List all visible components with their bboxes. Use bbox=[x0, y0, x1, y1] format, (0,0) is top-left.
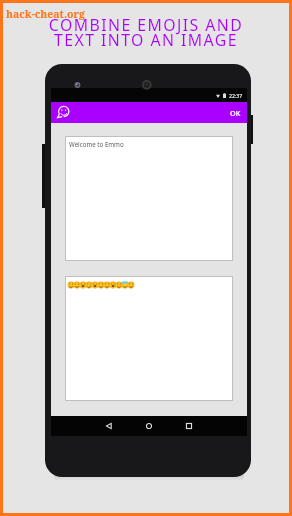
button[interactable]: Back bbox=[101, 418, 117, 434]
button[interactable]: Recent apps bbox=[181, 418, 197, 434]
button[interactable] bbox=[65, 276, 233, 401]
staticText: Welcome to Emmo bbox=[69, 140, 124, 148]
button[interactable]: Welcome to Emmo bbox=[65, 136, 233, 261]
button[interactable]: Emoji chat bbox=[57, 105, 72, 120]
staticText: COMBINE EMOJIS AND TEXT INTO AN IMAGE bbox=[0, 14, 292, 51]
staticText: 22:37 bbox=[229, 92, 243, 99]
button[interactable]: OK bbox=[224, 103, 247, 123]
staticText: OK bbox=[230, 108, 241, 118]
button[interactable]: Home bbox=[141, 418, 157, 434]
staticText: hack-cheat.org bbox=[6, 7, 85, 21]
